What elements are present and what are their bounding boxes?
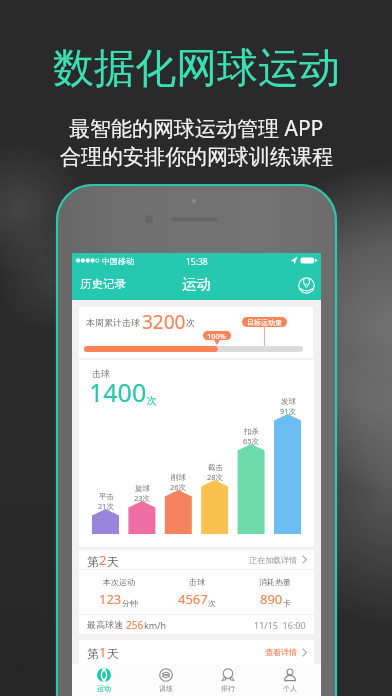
button[interactable]: 第 (79, 640, 314, 664)
button[interactable]: 第 (79, 550, 314, 634)
staticText: 23次 (134, 493, 151, 503)
staticText: 数据化网球运动 (53, 43, 340, 95)
staticText: 1 (99, 643, 107, 661)
button[interactable]: 历史记录 (80, 268, 126, 300)
staticText: 本周累计击球 (86, 317, 140, 328)
staticText: 击球 (92, 368, 110, 379)
staticText: 第 (87, 554, 99, 569)
staticText: 1400 (89, 375, 147, 409)
button[interactable]: 个人 (259, 664, 321, 696)
staticText: 发球 (281, 397, 296, 406)
staticText: 256 (126, 618, 144, 632)
staticText: 正在加载详情 (249, 555, 297, 565)
staticText: 运动 (182, 275, 211, 293)
staticText: 平击 (99, 492, 114, 501)
staticText: 消耗热量 (259, 577, 291, 587)
staticText: 查看详情 (265, 647, 297, 657)
staticText: 2 (99, 551, 107, 569)
staticText: 运动 (97, 684, 111, 693)
staticText: 3200 (142, 309, 186, 335)
staticText: 卡 (283, 598, 291, 608)
staticText: 次 (186, 317, 195, 328)
staticText: 旋球 (135, 484, 150, 493)
staticText: 天 (107, 554, 119, 569)
staticText: 91次 (280, 406, 297, 416)
button[interactable]: 排行 (197, 664, 259, 696)
staticText: 第 (87, 646, 99, 661)
staticText: 天 (107, 646, 119, 661)
staticText: 中国移动 (102, 256, 134, 266)
staticText: 截击 (208, 463, 223, 472)
staticText: 目标运动量 (247, 318, 282, 327)
staticText: 123 (99, 590, 122, 608)
staticText: 训练 (159, 684, 173, 693)
staticText: 11/15 16:00 (254, 619, 306, 631)
staticText: 历史记录 (80, 277, 126, 291)
button[interactable]: 运动 (72, 664, 135, 696)
staticText: 最高球速 (87, 619, 123, 630)
button[interactable]: 训练 (135, 664, 197, 696)
button[interactable]: 击球 (79, 360, 314, 547)
staticText: 击球 (189, 577, 205, 587)
staticText: 28次 (207, 472, 224, 482)
staticText: 本次运动 (103, 577, 135, 587)
button[interactable]: 本周累计击球 (79, 307, 313, 358)
staticText: 次 (208, 598, 216, 608)
staticText: 15:38 (186, 256, 208, 268)
staticText: 分钟 (122, 598, 138, 608)
staticText: 削球 (171, 473, 186, 482)
staticText: 100% (207, 331, 227, 340)
staticText: 4567 (178, 590, 208, 608)
staticText: 次 (147, 394, 157, 407)
staticText: 21次 (98, 501, 115, 511)
staticText: km/h (144, 619, 167, 631)
staticText: 合理的安排你的网球训练课程 (60, 144, 333, 170)
staticText: 26次 (170, 482, 187, 492)
staticText: 排行 (221, 684, 235, 693)
staticText: 65次 (243, 436, 260, 446)
staticText: 扣杀 (244, 427, 259, 436)
staticText: 个人 (283, 684, 297, 693)
staticText: 最智能的网球运动管理 APP (69, 114, 324, 143)
staticText: 890 (260, 590, 283, 608)
button[interactable]: Tennis court (294, 273, 318, 297)
